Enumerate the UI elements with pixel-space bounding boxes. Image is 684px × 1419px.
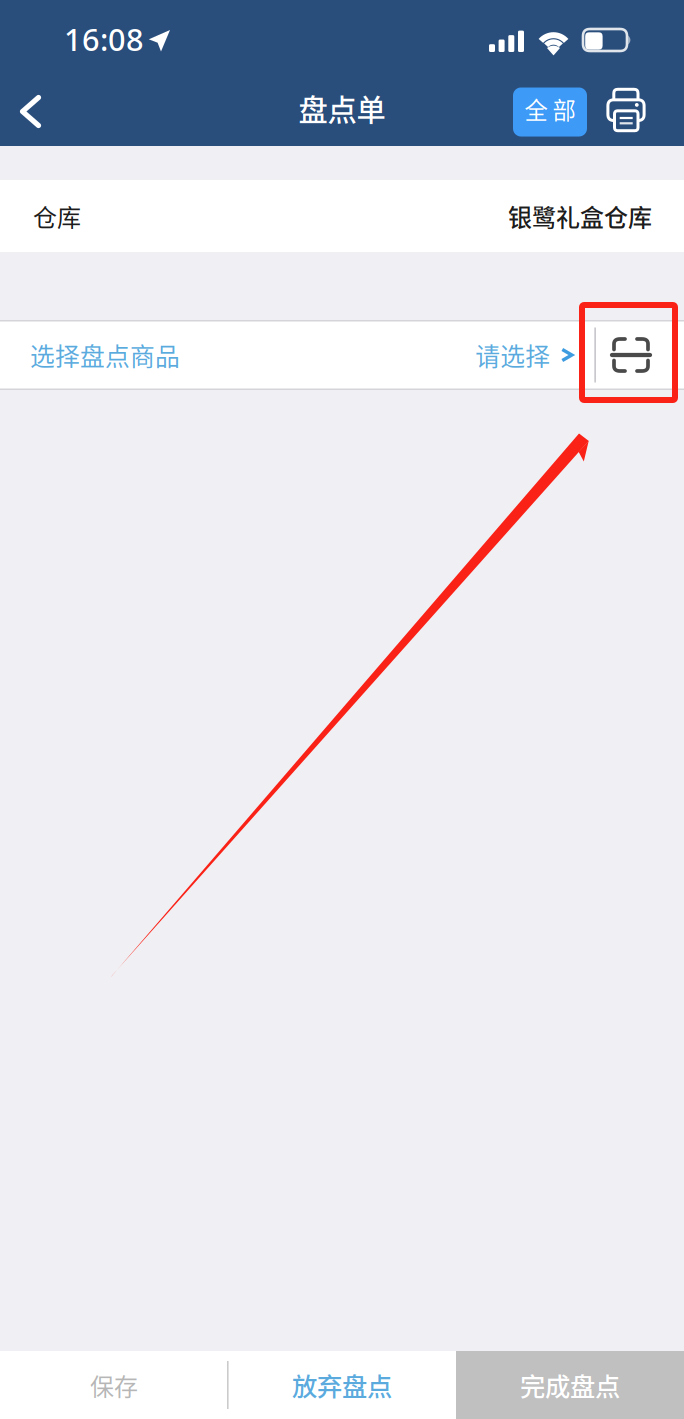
staticText: 保存 (90, 1368, 138, 1402)
button[interactable]: 保存 (0, 1351, 228, 1419)
staticText: 请选择 (475, 337, 550, 373)
button[interactable]: Print (587, 78, 665, 146)
staticText: 16:08 (64, 18, 144, 60)
button[interactable]: 选择盘点商品 (0, 320, 684, 390)
staticText: 全 部 (524, 92, 575, 126)
button[interactable]: 完成盘点 (456, 1351, 684, 1419)
staticText: 放弃盘点 (292, 1367, 392, 1403)
button[interactable]: 放弃盘点 (228, 1351, 456, 1419)
button[interactable]: 全 部 (495, 78, 587, 146)
button[interactable]: Back (0, 78, 62, 146)
staticText: 盘点单 (298, 87, 385, 129)
staticText: 选择盘点商品 (30, 337, 180, 373)
staticText: 仓库 (33, 199, 81, 233)
staticText: 银鹭礼盒仓库 (508, 199, 652, 233)
staticText: 完成盘点 (520, 1367, 620, 1403)
